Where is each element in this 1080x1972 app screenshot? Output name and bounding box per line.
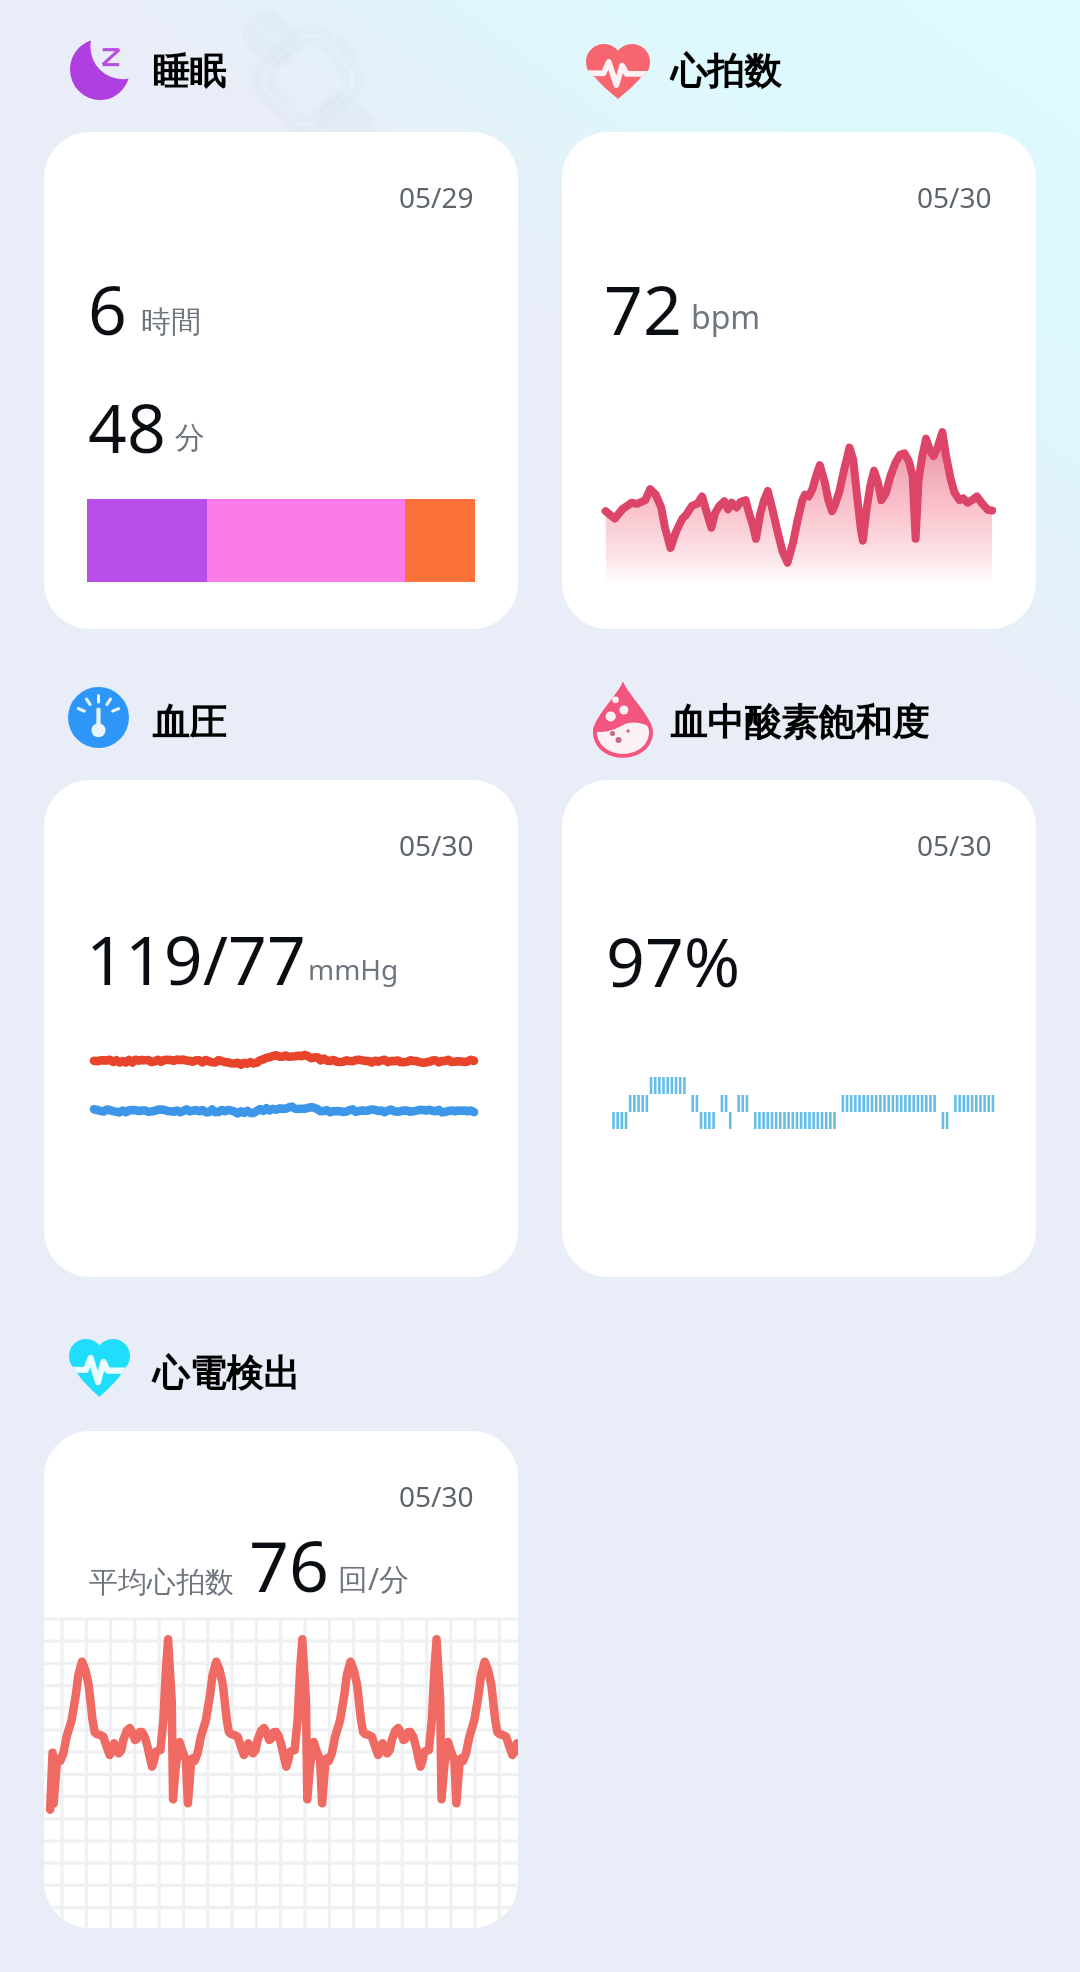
button[interactable]: 05/30 [44, 1431, 518, 1928]
other: Blood pressure [68, 687, 129, 748]
staticText: 05/30 [917, 826, 992, 864]
button[interactable]: 05/30 [44, 780, 518, 1277]
staticText: 72 [604, 262, 682, 355]
button[interactable]: 05/30 [562, 780, 1036, 1277]
staticText: 05/30 [399, 826, 474, 864]
other: Sleep [70, 39, 130, 100]
button[interactable]: 05/30 [562, 132, 1036, 629]
staticText: 48 [88, 380, 166, 473]
staticText: 平均心拍数 [89, 1564, 234, 1601]
staticText: 血中酸素飽和度 [670, 699, 929, 746]
staticText: 97% [606, 914, 741, 1007]
staticText: 分 [175, 419, 205, 457]
staticText: 119/77 [86, 912, 306, 1005]
staticText: 心電検出 [152, 1350, 300, 1397]
staticText: bpm [691, 295, 761, 339]
staticText: 05/29 [399, 178, 474, 216]
other: ECG [69, 1339, 130, 1397]
other: Blood oxygen [593, 678, 653, 759]
staticText: 05/30 [917, 178, 992, 216]
staticText: 血圧 [152, 699, 226, 746]
button[interactable]: 05/29 [44, 132, 518, 629]
staticText: 6 [88, 262, 127, 355]
staticText: 回/分 [338, 1558, 410, 1599]
staticText: mmHg [308, 950, 399, 988]
staticText: 心拍数 [670, 48, 781, 95]
staticText: 05/30 [399, 1477, 474, 1515]
staticText: 時間 [141, 303, 201, 341]
other: Heart rate [586, 44, 650, 99]
staticText: 76 [249, 1517, 330, 1612]
staticText: 睡眠 [152, 48, 226, 95]
